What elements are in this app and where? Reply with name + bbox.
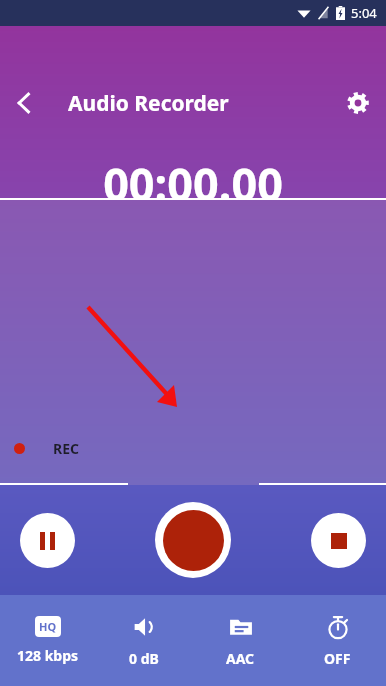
staticText: HQ (39, 619, 57, 634)
staticText: 0 dB (129, 649, 159, 668)
staticText: 00:00.00 (0, 153, 386, 214)
button[interactable]: Stop (311, 513, 366, 568)
button[interactable]: Back (2, 81, 46, 125)
button[interactable]: Pause (20, 513, 75, 568)
staticText: OFF (324, 649, 351, 668)
staticText: 128 kbps (17, 646, 79, 665)
button[interactable]: AAC (192, 595, 289, 686)
button[interactable]: Record (155, 502, 231, 578)
staticText: AAC (226, 649, 255, 668)
staticText: Audio Recorder (68, 89, 229, 118)
staticText: 5:04 (351, 4, 377, 22)
button[interactable]: OFF (289, 595, 386, 686)
button[interactable]: 0 dB (96, 595, 192, 686)
staticText: REC (53, 439, 80, 458)
button[interactable]: HQ (0, 595, 96, 686)
button[interactable]: Settings (336, 81, 380, 125)
